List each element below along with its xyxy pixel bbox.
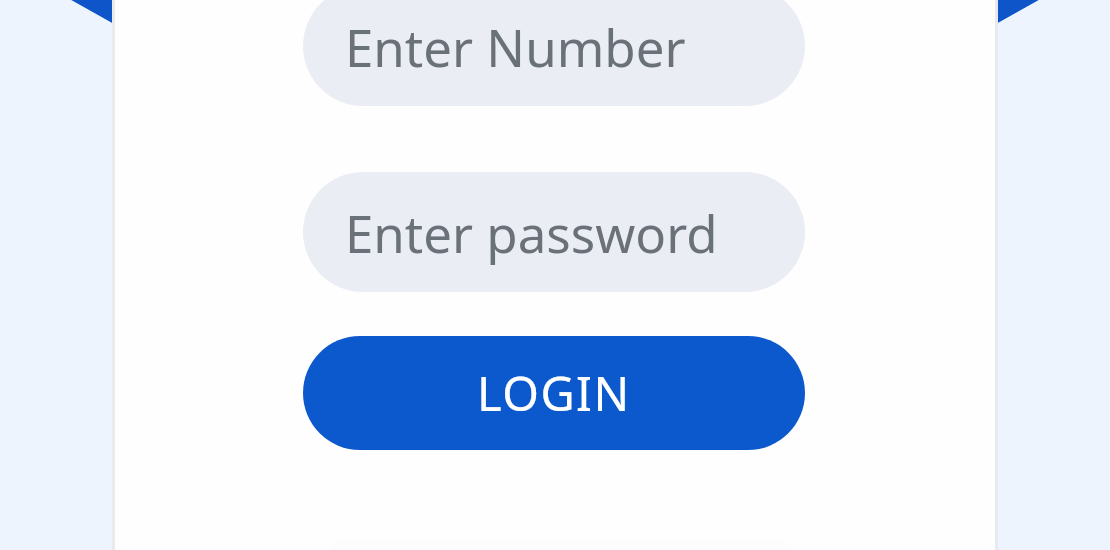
button[interactable]: Login (303, 336, 805, 450)
staticText: Enter Number (345, 12, 686, 81)
staticText: Enter password (345, 198, 718, 267)
button[interactable]: Enter Number (303, 0, 805, 106)
button[interactable]: Enter password (303, 172, 805, 292)
staticText: LOGIN (477, 361, 631, 425)
